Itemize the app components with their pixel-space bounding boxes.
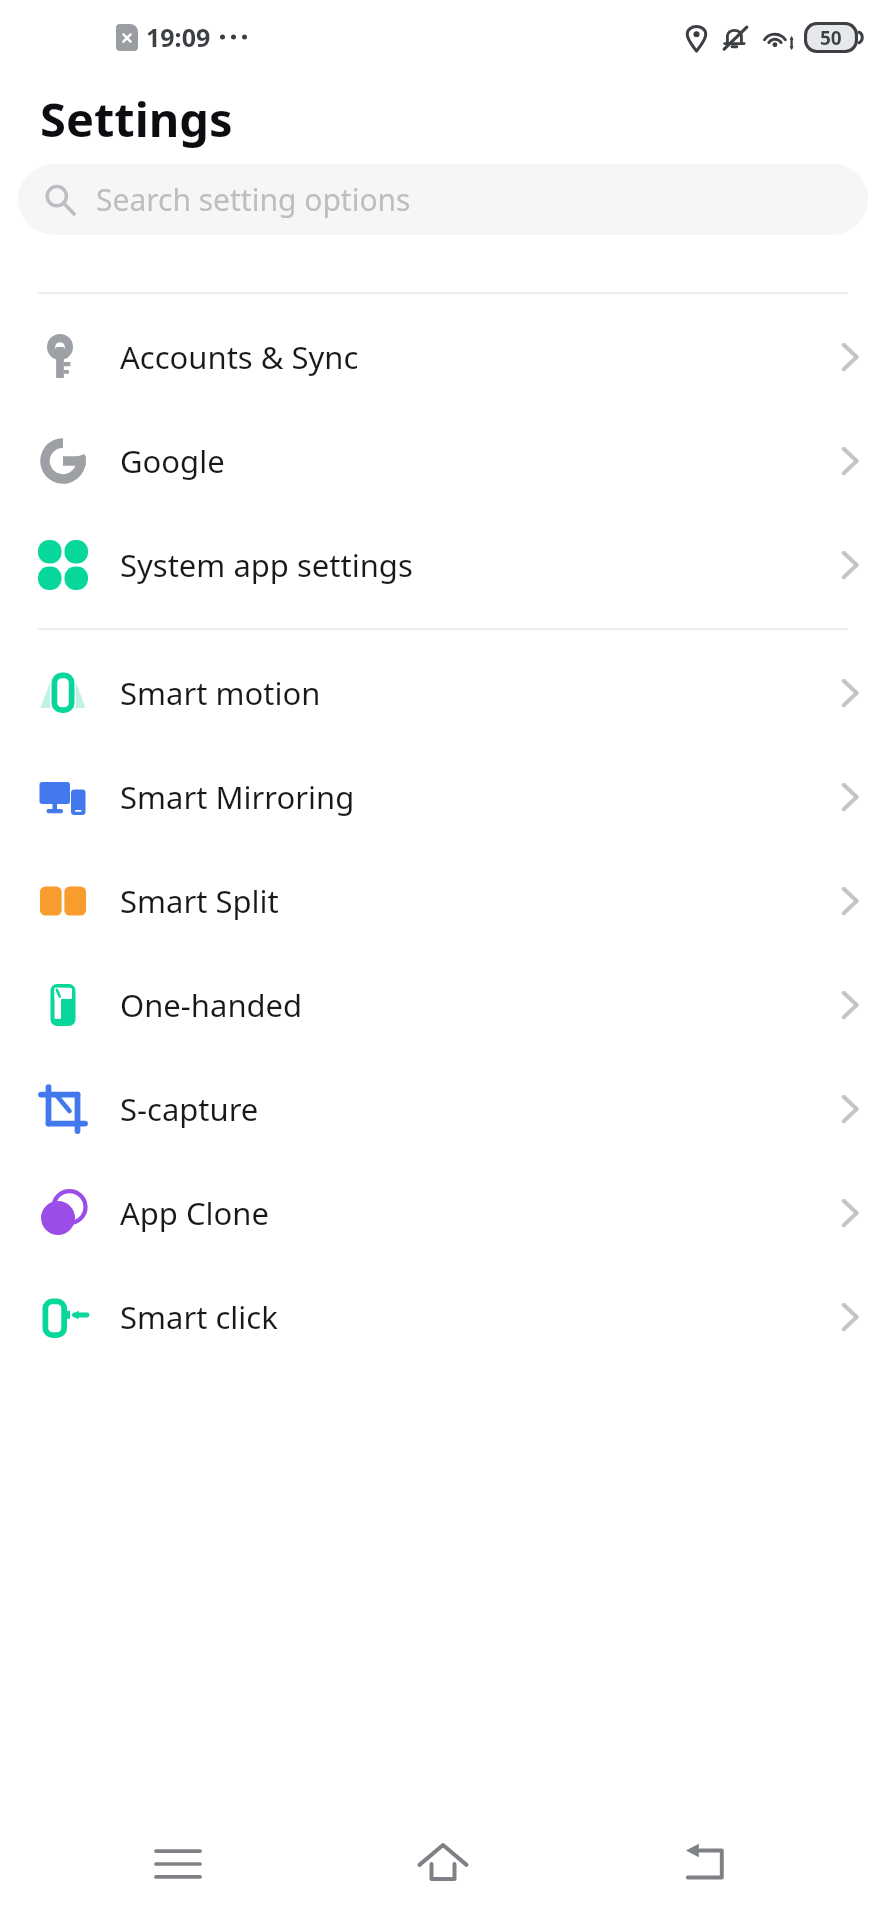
staticText: 19:09 [146,20,211,54]
button[interactable]: Smart motion [0,641,886,745]
button[interactable]: Smart Split [0,849,886,953]
button[interactable]: Home [395,1816,491,1912]
staticText: One-handed [120,984,303,1026]
button[interactable]: App Clone [0,1161,886,1265]
staticText: App Clone [120,1192,269,1234]
staticText: Smart click [120,1296,278,1338]
staticText: System app settings [120,544,413,586]
button[interactable]: Recent apps [130,1816,226,1912]
button[interactable]: Smart click [0,1265,886,1369]
button[interactable]: Search setting options [18,164,868,235]
button[interactable]: S-capture [0,1057,886,1161]
staticText: Settings [40,87,233,151]
staticText: Search setting options [96,179,411,220]
button[interactable]: Accounts & Sync [0,305,886,409]
button[interactable]: Smart Mirroring [0,745,886,849]
staticText: S-capture [120,1088,259,1130]
staticText: Accounts & Sync [120,336,359,378]
staticText: 50 [820,25,842,51]
staticText: Google [120,440,225,482]
staticText: Smart motion [120,672,321,714]
button[interactable]: Google [0,409,886,513]
staticText: Smart Split [120,880,279,922]
button[interactable]: System app settings [0,513,886,617]
button[interactable]: Back [660,1816,756,1912]
staticText: Smart Mirroring [120,776,355,818]
button[interactable]: One-handed [0,953,886,1057]
